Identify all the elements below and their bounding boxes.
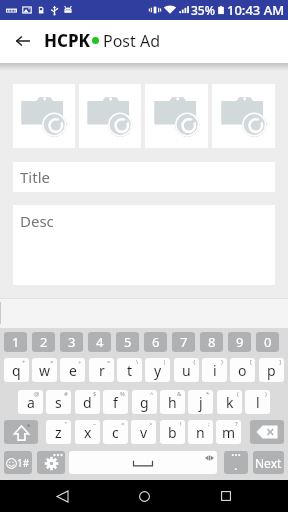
button[interactable]: w [32,358,57,382]
button[interactable]: 2 [32,332,55,352]
button[interactable]: Next [253,451,284,474]
button[interactable]: z [46,420,71,444]
staticText: > [149,420,153,428]
staticText: e [69,361,77,380]
button[interactable]: a [18,390,43,414]
staticText: 6 [152,333,160,351]
button[interactable]: 3 [60,332,83,352]
staticText: HCPK [44,29,91,52]
staticText: 9 [236,333,244,351]
button[interactable]: Settings [37,451,65,474]
button[interactable]: Add photo [13,84,75,148]
staticText: q [12,361,21,380]
button[interactable]: x [75,420,100,444]
staticText: n [196,423,205,442]
staticText: z [55,423,62,442]
staticText: w [39,361,51,380]
staticText: h [168,393,177,412]
staticText: \ [136,358,139,366]
staticText: . [234,456,238,474]
button[interactable]: Backspace [250,420,284,444]
staticText: * [206,390,210,398]
staticText: × [50,358,54,366]
staticText: 0 [264,333,272,351]
button[interactable]: Recent apps [206,480,246,512]
button[interactable]: 0 [256,332,279,352]
button[interactable]: g [132,390,157,414]
button[interactable]: f [103,390,128,414]
staticText: k [226,393,234,412]
button[interactable]: e [60,358,85,382]
button[interactable]: l [245,390,270,414]
button[interactable]: Home [124,480,164,512]
staticText: r [99,361,105,380]
staticText: y [154,361,162,380]
button[interactable]: k [217,390,242,414]
button[interactable]: 4 [88,332,111,352]
staticText: | [163,358,167,366]
button[interactable]: p [259,358,284,382]
button[interactable]: Add photo [79,84,141,148]
button[interactable]: c [103,420,128,444]
button[interactable]: 7 [172,332,195,352]
staticText: i [213,361,217,380]
staticText: t [127,361,133,380]
staticText: ) [265,390,267,398]
button[interactable]: 6 [144,332,167,352]
button[interactable]: Shift [4,420,38,444]
button[interactable]: . [224,451,248,474]
staticText: ! [180,420,182,428]
staticText: Title [20,167,50,187]
button[interactable]: o [230,358,255,382]
staticText: = [107,358,111,366]
button[interactable]: 9 [228,332,251,352]
button[interactable]: Add photo [145,84,208,148]
staticText: o [238,361,247,380]
button[interactable]: q [4,358,29,382]
staticText: 5 [124,333,132,351]
button[interactable]: j [188,390,213,414]
staticText: ] [279,358,281,366]
button[interactable]: Back [8,26,38,56]
staticText: + [22,358,26,366]
button[interactable]: h [160,390,185,414]
button[interactable]: Desc [13,205,275,285]
staticText: v [140,423,148,442]
staticText: ; [208,420,210,428]
button[interactable]: b [160,420,185,444]
button[interactable]: d [75,390,100,414]
button[interactable]: Title [13,162,275,192]
button[interactable]: v [131,420,156,444]
staticText: $ [93,390,97,398]
button[interactable]: 8 [200,332,223,352]
button[interactable]: t [117,358,142,382]
staticText: Post Ad [103,30,161,52]
button[interactable]: u [174,358,199,382]
staticText: & [177,390,182,398]
staticText: 2 [40,333,48,351]
staticText: c [112,423,119,442]
staticText: % [120,390,125,398]
button[interactable]: m [216,420,241,444]
staticText: d [83,393,92,412]
button[interactable]: n [188,420,213,444]
button[interactable]: y [145,358,170,382]
button[interactable]: Space [69,451,217,474]
staticText: 1 [12,333,20,351]
staticText: 35% [191,2,215,18]
staticText: l [256,393,260,412]
button[interactable]: Back [42,480,82,512]
button[interactable]: i [202,358,227,382]
staticText: x [84,423,92,442]
button[interactable]: r [89,358,114,382]
staticText: Desc [20,211,54,231]
staticText: ~ [93,420,97,428]
button[interactable]: Emoji and symbols [4,451,32,474]
button[interactable]: 1 [4,332,27,352]
button[interactable]: 5 [116,332,139,352]
button[interactable]: Add photo [212,84,275,148]
staticText: # [64,390,68,398]
staticText: p [267,361,276,380]
staticText: < [121,420,125,428]
button[interactable]: s [46,390,71,414]
